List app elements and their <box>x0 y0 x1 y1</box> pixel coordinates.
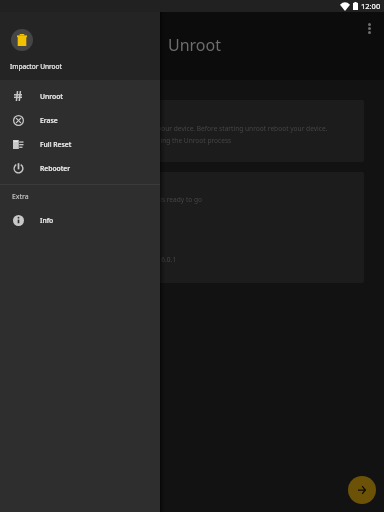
button[interactable]: Start unroot <box>348 476 376 504</box>
staticText: This tool will unroot your device. Befor… <box>95 124 328 133</box>
staticText: Extra <box>12 192 29 201</box>
staticText: Unroot <box>168 34 222 56</box>
staticText: Erase <box>40 116 58 125</box>
staticText: Info <box>40 216 54 225</box>
staticText: Rebooter <box>40 164 71 173</box>
staticText: Full Reset <box>40 140 72 149</box>
button[interactable]: Unroot <box>0 84 160 108</box>
button[interactable]: Full Reset <box>0 132 160 156</box>
staticText: Impactor Unroot <box>10 62 62 71</box>
staticText: Do not do anything during the Unroot pro… <box>88 136 232 145</box>
button[interactable]: Rebooter <box>0 156 160 180</box>
staticText: Your device is ready to go <box>123 195 203 204</box>
button[interactable]: More options <box>359 18 379 38</box>
staticText: 12:00 <box>361 1 381 11</box>
staticText: Android version : 6.0.1 <box>107 255 177 264</box>
staticText: Unroot <box>40 92 63 101</box>
button[interactable]: Erase <box>0 108 160 132</box>
button[interactable]: Info <box>0 208 160 232</box>
